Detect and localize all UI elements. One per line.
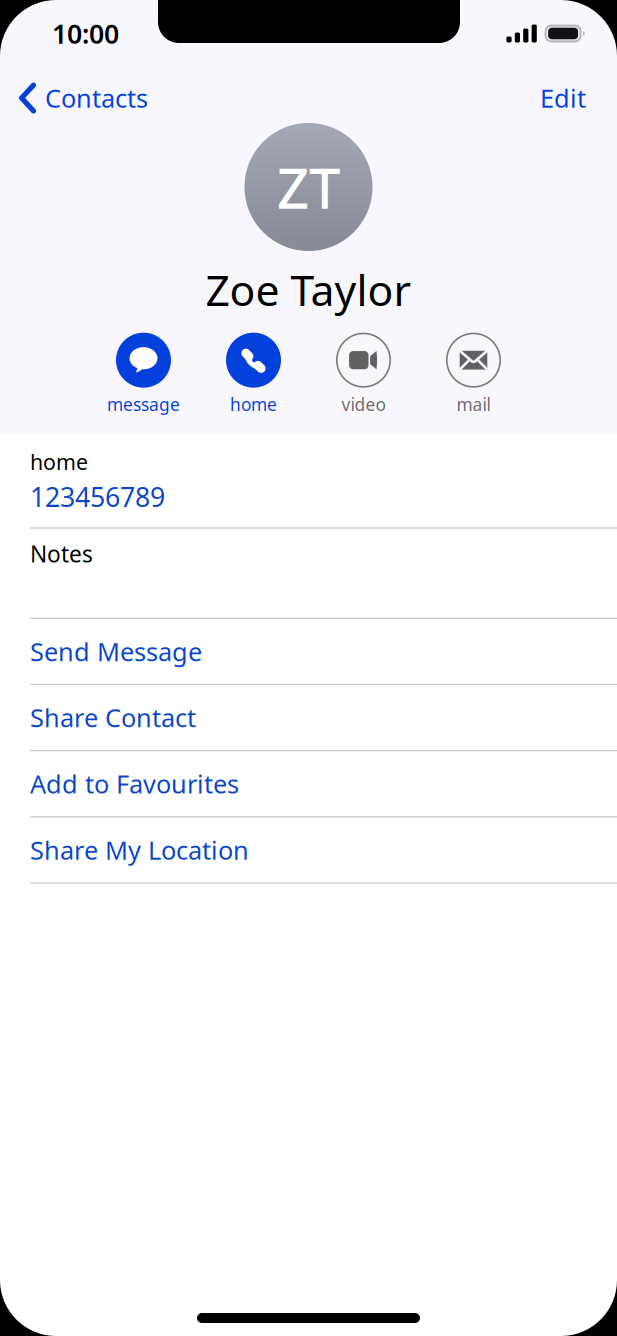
staticText: Send Message <box>30 634 202 668</box>
staticText: Edit <box>540 81 586 115</box>
button[interactable]: Notes <box>0 529 617 618</box>
button[interactable]: Send Message <box>0 619 617 684</box>
staticText: message <box>107 393 180 416</box>
staticText: Add to Favourites <box>30 767 239 800</box>
staticText: 10:00 <box>52 16 119 51</box>
button[interactable]: Share My Location <box>0 817 617 882</box>
button[interactable]: home <box>0 435 617 527</box>
staticText: home <box>230 393 277 416</box>
staticText: home <box>30 448 88 476</box>
button[interactable]: Share Contact <box>0 685 617 750</box>
button[interactable]: video <box>308 333 418 416</box>
button[interactable]: mail <box>418 333 528 416</box>
button[interactable]: Add to Favourites <box>0 751 617 816</box>
button[interactable]: Edit <box>516 67 617 123</box>
button[interactable]: Contacts <box>0 67 160 123</box>
staticText: mail <box>456 393 490 416</box>
staticText: Contacts <box>45 81 148 115</box>
button[interactable]: home <box>198 333 308 416</box>
staticText: Share Contact <box>30 701 196 734</box>
staticText: 123456789 <box>30 479 165 514</box>
staticText: ZT <box>277 150 340 224</box>
staticText: Zoe Taylor <box>205 261 411 318</box>
staticText: Notes <box>30 539 93 569</box>
button[interactable]: message <box>88 333 198 416</box>
staticText: video <box>341 393 385 416</box>
staticText: Share My Location <box>30 833 249 867</box>
